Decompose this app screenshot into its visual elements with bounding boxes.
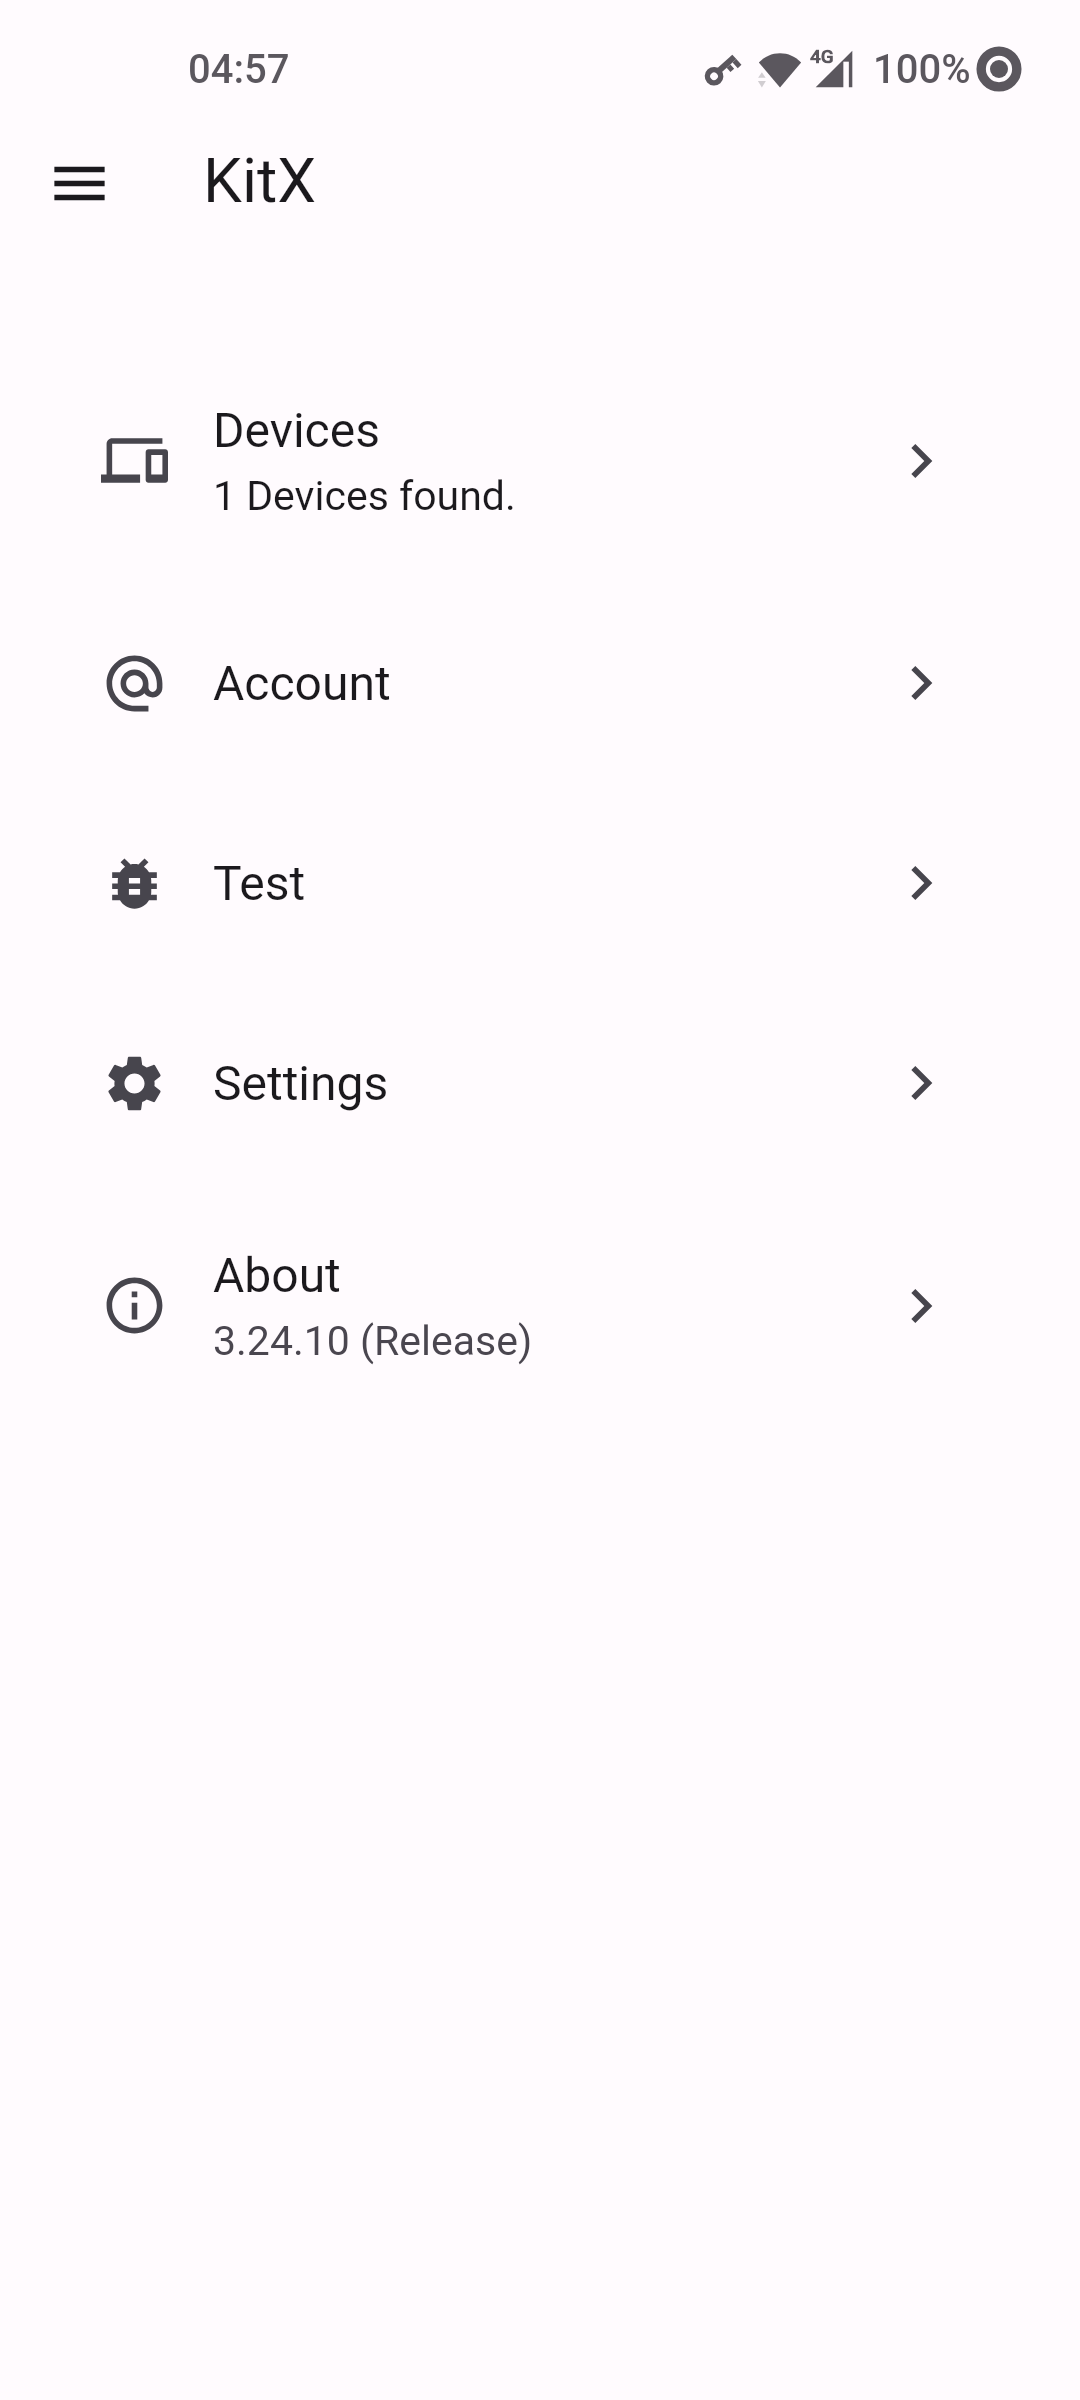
button[interactable]: Open navigation menu [12, 116, 146, 250]
button[interactable]: Test [0, 783, 1080, 983]
button[interactable]: Settings [0, 983, 1080, 1183]
button[interactable]: Account [0, 583, 1080, 783]
staticText: KitX [203, 144, 317, 217]
staticText: Account [213, 655, 391, 712]
button[interactable]: Devices [0, 338, 1080, 583]
staticText: 100% [873, 46, 971, 93]
staticText: 3.24.10 (Release) [213, 1317, 533, 1365]
staticText: Settings [213, 1055, 389, 1112]
staticText: 4G [810, 45, 834, 67]
staticText: 04:57 [188, 46, 290, 93]
staticText: About [213, 1247, 341, 1304]
staticText: Test [213, 855, 306, 912]
staticText: Devices [213, 402, 380, 459]
button[interactable]: About [0, 1183, 1080, 1428]
staticText: 1 Devices found. [213, 472, 516, 520]
